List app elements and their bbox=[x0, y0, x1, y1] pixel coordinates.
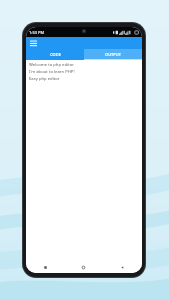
button[interactable]: CODE bbox=[26, 49, 84, 59]
staticText: OUTPUT bbox=[105, 52, 121, 57]
staticText: 1:53 PM bbox=[29, 30, 45, 35]
staticText: Easy php editor bbox=[29, 76, 60, 82]
button[interactable]: Open navigation menu bbox=[28, 38, 38, 48]
staticText: I'm about to learn PHP! bbox=[29, 69, 75, 75]
button[interactable]: Recent apps bbox=[26, 261, 64, 273]
button[interactable]: Back bbox=[103, 261, 142, 273]
button[interactable]: Home bbox=[64, 261, 103, 273]
staticText: Welcome to php editor bbox=[29, 62, 74, 68]
button[interactable]: OUTPUT bbox=[84, 49, 142, 59]
staticText: CODE bbox=[50, 52, 61, 57]
